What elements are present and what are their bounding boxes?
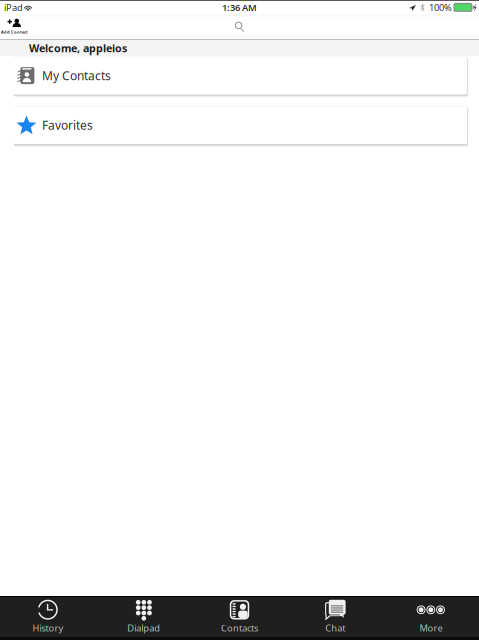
- staticText: History: [32, 622, 63, 634]
- button[interactable]: More: [383, 595, 479, 638]
- button[interactable]: History: [0, 595, 96, 638]
- staticText: 1:36 AM: [222, 1, 257, 14]
- staticText: Dialpad: [127, 622, 160, 634]
- button[interactable]: Add Contact: [0, 14, 29, 39]
- button[interactable]: Dialpad: [96, 595, 192, 638]
- staticText: Add Contact: [1, 29, 28, 35]
- staticText: Welcome, appleios: [29, 41, 127, 55]
- staticText: Contacts: [221, 622, 258, 634]
- staticText: Favorites: [42, 117, 93, 133]
- button[interactable]: Favorites: [13, 106, 471, 148]
- button[interactable]: My Contacts: [13, 56, 471, 98]
- staticText: My Contacts: [42, 67, 111, 83]
- staticText: More: [420, 622, 443, 634]
- staticText: Chat: [325, 622, 345, 634]
- staticText: 100%: [429, 1, 452, 14]
- button[interactable]: Contacts: [192, 595, 287, 638]
- button[interactable]: Chat: [287, 595, 383, 638]
- staticText: iPad: [4, 1, 23, 14]
